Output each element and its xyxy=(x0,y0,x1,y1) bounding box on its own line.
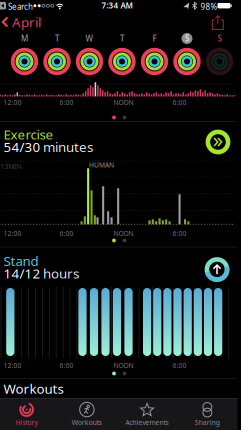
staticText: Sharing xyxy=(195,418,220,427)
button[interactable]: Activity rings xyxy=(108,47,136,75)
button[interactable]: History xyxy=(0,399,57,429)
button[interactable]: Activity rings xyxy=(140,47,168,75)
button[interactable]: Stand goal achieved xyxy=(204,257,229,282)
staticText: History xyxy=(16,418,38,427)
staticText: T xyxy=(120,33,124,44)
button[interactable]: Workouts xyxy=(57,399,117,429)
staticText: Stand xyxy=(3,252,38,270)
button[interactable]: Activity rings xyxy=(173,47,201,75)
staticText: W xyxy=(85,33,93,44)
staticText: 6:00 xyxy=(59,98,73,107)
staticText: 14/12 xyxy=(3,264,40,282)
staticText: minutes xyxy=(43,138,93,156)
staticText: M xyxy=(21,33,28,44)
staticText: Workouts xyxy=(3,380,63,397)
button[interactable]: Activity rings xyxy=(75,47,103,75)
staticText: 6:00 xyxy=(59,361,73,370)
staticText: April xyxy=(12,13,41,31)
staticText: NOON xyxy=(113,229,133,238)
staticText: 7:34 AM xyxy=(101,0,132,11)
staticText: Workouts xyxy=(72,418,102,427)
staticText: 12:00 xyxy=(3,229,21,238)
button[interactable]: Sharing xyxy=(177,399,237,429)
button[interactable]: Activity rings xyxy=(43,47,71,75)
button[interactable]: Exercise goal achieved xyxy=(205,129,230,154)
button[interactable]: Achievements xyxy=(117,399,177,429)
staticText: hours xyxy=(43,264,79,282)
staticText: 6:00 xyxy=(172,229,186,238)
staticText: 98% xyxy=(200,1,217,12)
staticText: Exercise xyxy=(3,125,53,143)
staticText: 6:00 xyxy=(172,98,186,107)
staticText: 12:00 xyxy=(3,98,21,107)
staticText: 12:00 xyxy=(3,361,21,370)
staticText: T xyxy=(55,33,59,44)
staticText: S xyxy=(185,33,189,44)
button[interactable]: Workouts xyxy=(0,379,241,397)
staticText: NOON xyxy=(113,98,133,107)
staticText: 13MIN xyxy=(0,162,21,171)
button[interactable]: April xyxy=(1,13,41,31)
staticText: Achievements xyxy=(126,418,169,427)
staticText: HUMAN xyxy=(89,160,114,169)
staticText: 6:00 xyxy=(172,361,186,370)
button[interactable]: Activity rings xyxy=(10,47,38,75)
staticText: 6:00 xyxy=(59,229,73,238)
staticText: 54/30 xyxy=(3,138,40,156)
staticText: S xyxy=(217,33,221,44)
staticText: Search xyxy=(8,1,33,12)
staticText: F xyxy=(152,33,156,44)
button[interactable]: Share xyxy=(212,15,224,30)
button[interactable]: Activity rings xyxy=(205,47,233,75)
staticText: NOON xyxy=(113,361,133,370)
